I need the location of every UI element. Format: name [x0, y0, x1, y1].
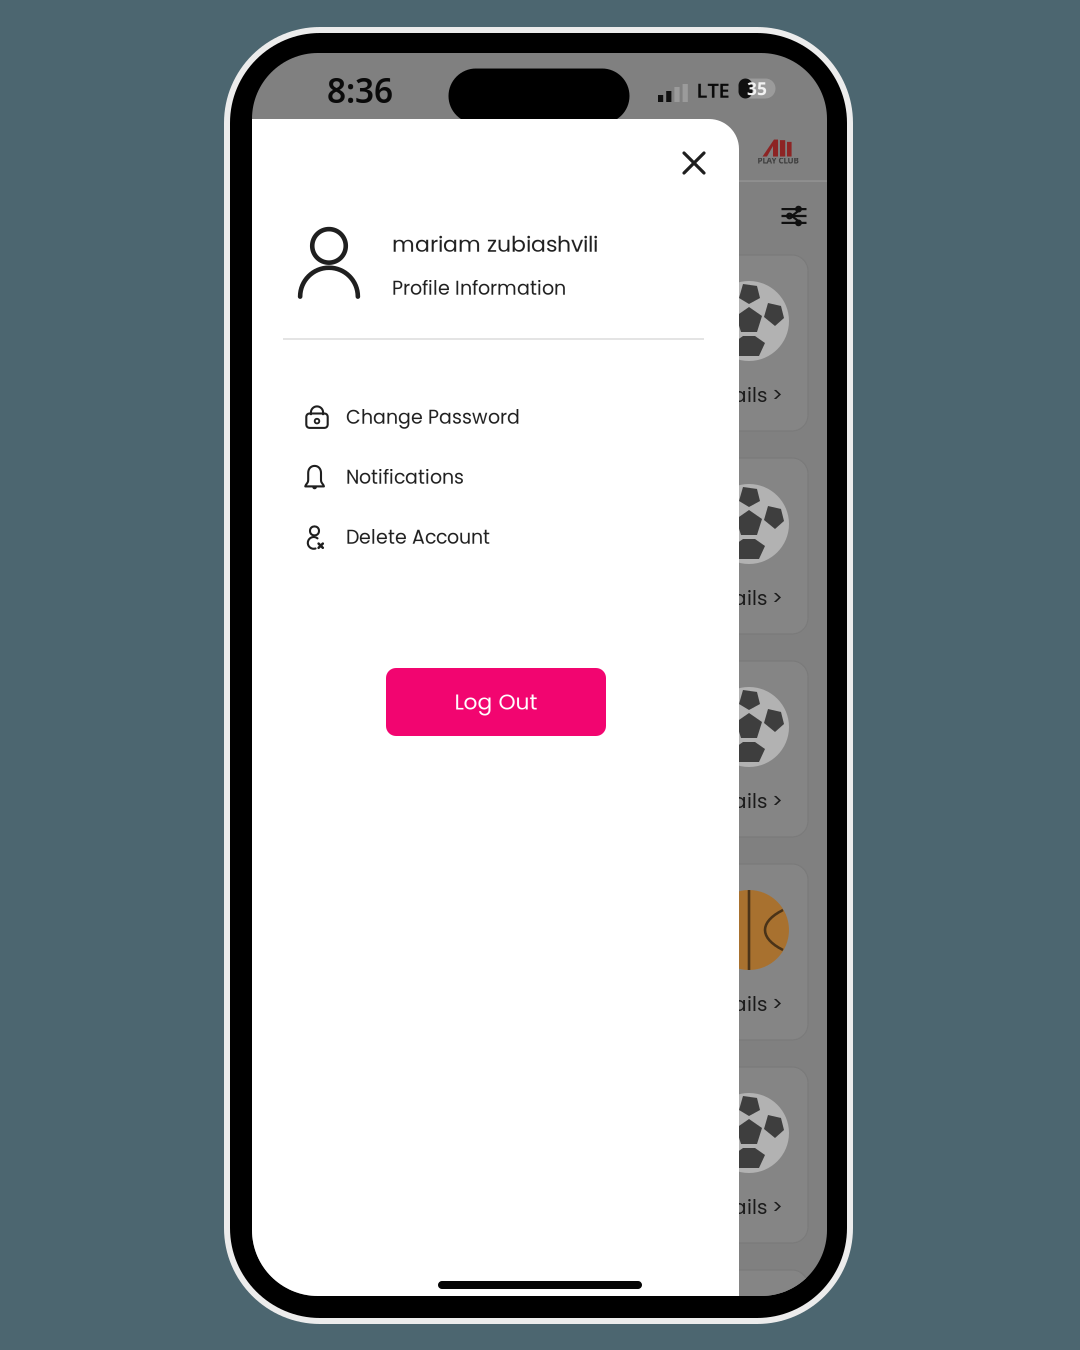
staticText: Log Out: [454, 687, 537, 717]
button[interactable]: ails >: [252, 53, 827, 1296]
staticText: ails >: [733, 787, 783, 815]
button[interactable]: Log Out: [386, 668, 606, 736]
button[interactable]: Close: [665, 134, 723, 192]
staticText: ails >: [733, 1193, 783, 1221]
staticText: 35: [747, 77, 767, 100]
button[interactable]: Filters: [781, 208, 806, 224]
button[interactable]: Delete Account: [283, 511, 703, 563]
button[interactable]: Notifications: [283, 451, 703, 503]
button[interactable]: ails >: [252, 53, 827, 1296]
staticText: LTE: [696, 77, 729, 103]
staticText: Delete Account: [346, 524, 490, 550]
staticText: mariam zubiashvili: [392, 229, 598, 259]
button[interactable]: ails >: [252, 53, 827, 1296]
staticText: PLAY CLUB: [757, 155, 798, 166]
staticText: ails >: [733, 381, 783, 409]
staticText: Profile Information: [392, 275, 566, 301]
staticText: Change Password: [346, 404, 520, 430]
staticText: ails >: [733, 584, 783, 612]
button[interactable]: ails >: [252, 53, 827, 1296]
button[interactable]: Change Password: [283, 391, 703, 443]
staticText: 8:36: [327, 68, 393, 112]
button[interactable]: ails >: [252, 53, 827, 1296]
button[interactable]: ails >: [252, 53, 827, 1296]
staticText: Notifications: [346, 464, 464, 490]
staticText: ails >: [733, 990, 783, 1018]
